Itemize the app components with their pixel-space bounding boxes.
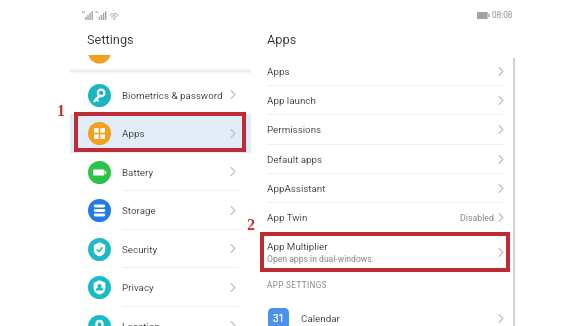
staticText: Settings: [87, 32, 134, 47]
button[interactable]: App launch: [250, 86, 516, 115]
button[interactable]: Apps: [70, 114, 251, 153]
staticText: Battery: [122, 167, 154, 178]
staticText: APP SETTINGS: [267, 280, 327, 290]
button[interactable]: Permissions: [250, 115, 516, 144]
button[interactable]: Apps: [250, 57, 516, 86]
staticText: 08:08: [492, 10, 513, 20]
staticText: Apps: [267, 66, 290, 77]
staticText: App Twin: [267, 212, 308, 223]
staticText: Apps: [267, 32, 297, 47]
staticText: Biometrics & password: [122, 90, 223, 101]
staticText: Disabled: [460, 213, 494, 223]
staticText: Permissions: [267, 124, 322, 135]
staticText: Apps: [122, 128, 145, 139]
staticText: Location: [122, 321, 160, 326]
staticText: App launch: [267, 95, 316, 106]
button[interactable]: App Twin: [250, 203, 516, 232]
button[interactable]: Privacy: [70, 268, 251, 307]
staticText: Open apps in dual-windows.: [267, 254, 374, 264]
button[interactable]: Security: [70, 230, 251, 269]
button[interactable]: Default apps: [250, 145, 516, 174]
staticText: 1: [57, 102, 65, 120]
button[interactable]: Storage: [70, 191, 251, 230]
button[interactable]: Battery: [70, 153, 251, 192]
staticText: Privacy: [122, 282, 154, 293]
staticText: Security: [122, 244, 158, 255]
button[interactable]: Biometrics & password: [70, 76, 251, 115]
button[interactable]: Location: [70, 307, 251, 326]
button[interactable]: AppAssistant: [250, 174, 516, 203]
staticText: 31: [273, 313, 285, 325]
staticText: AppAssistant: [267, 183, 326, 194]
other: Battery: [477, 12, 490, 19]
staticText: Storage: [122, 205, 156, 216]
button[interactable]: App Multiplier: [250, 232, 516, 272]
staticText: Calendar: [301, 313, 340, 324]
staticText: Default apps: [267, 154, 323, 165]
button[interactable]: 31: [250, 304, 516, 326]
staticText: App Multiplier: [267, 241, 328, 252]
other: Signal strength and Wi-Fi: [82, 11, 120, 20]
staticText: 2: [247, 216, 255, 234]
